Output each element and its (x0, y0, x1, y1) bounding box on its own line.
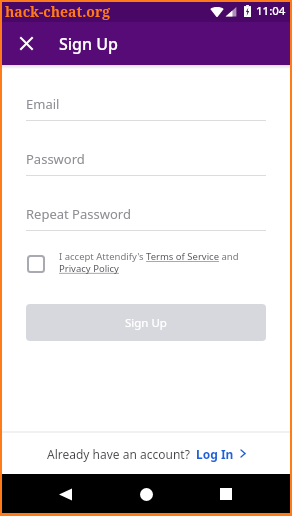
staticText: Email (26, 95, 60, 113)
button[interactable]: Sign Up (26, 304, 266, 341)
staticText: Sign Up (125, 315, 167, 331)
button[interactable]: Close (13, 30, 39, 56)
staticText: Password (26, 150, 85, 168)
staticText: I accept Attendify's Terms of Service an… (59, 250, 241, 275)
staticText: hack-cheat.org (5, 2, 111, 21)
staticText: Sign Up (59, 33, 118, 55)
button[interactable]: Back (49, 478, 81, 510)
button[interactable]: Recent apps (210, 478, 242, 510)
staticText: Already have an account? (47, 446, 190, 462)
button[interactable]: Already have an account? (2, 433, 290, 474)
staticText: Repeat Password (26, 205, 131, 223)
button[interactable]: Accept terms and conditions (27, 255, 45, 273)
staticText: 11:04 (256, 3, 286, 19)
staticText: Log In (196, 446, 234, 462)
button[interactable]: Home (130, 478, 162, 510)
